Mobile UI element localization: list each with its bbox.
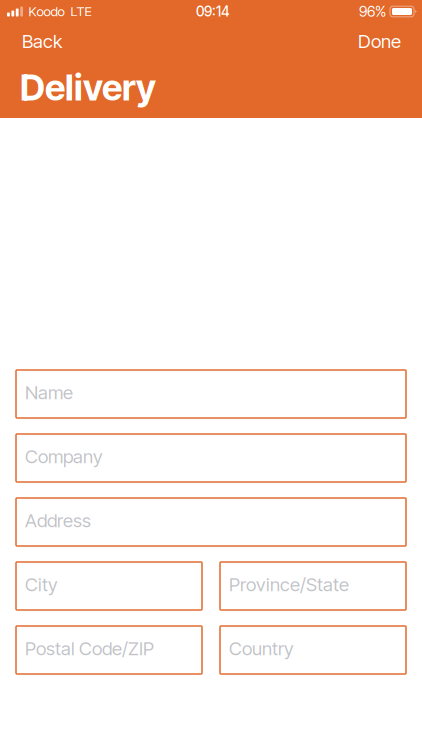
staticText: Postal Code/ZIP: [25, 637, 154, 660]
staticText: 09:14: [196, 3, 230, 20]
button[interactable]: Back: [22, 25, 74, 58]
staticText: Company: [25, 445, 103, 468]
staticText: Back: [22, 30, 62, 53]
button[interactable]: Name: [16, 370, 406, 418]
staticText: 96%: [359, 3, 386, 20]
staticText: Koodo: [28, 3, 64, 19]
staticText: Delivery: [20, 66, 156, 109]
staticText: Address: [25, 509, 91, 532]
staticText: Done: [358, 30, 401, 53]
button[interactable]: Country: [220, 626, 406, 674]
staticText: Country: [229, 637, 294, 660]
staticText: Province/State: [229, 573, 349, 596]
button[interactable]: Postal Code/ZIP: [16, 626, 202, 674]
button[interactable]: Done: [346, 25, 401, 58]
button[interactable]: Address: [16, 498, 406, 546]
staticText: Name: [25, 381, 73, 404]
staticText: City: [25, 573, 58, 596]
button[interactable]: Company: [16, 434, 406, 482]
button[interactable]: Province/State: [220, 562, 406, 610]
button[interactable]: City: [16, 562, 202, 610]
staticText: LTE: [70, 3, 91, 19]
